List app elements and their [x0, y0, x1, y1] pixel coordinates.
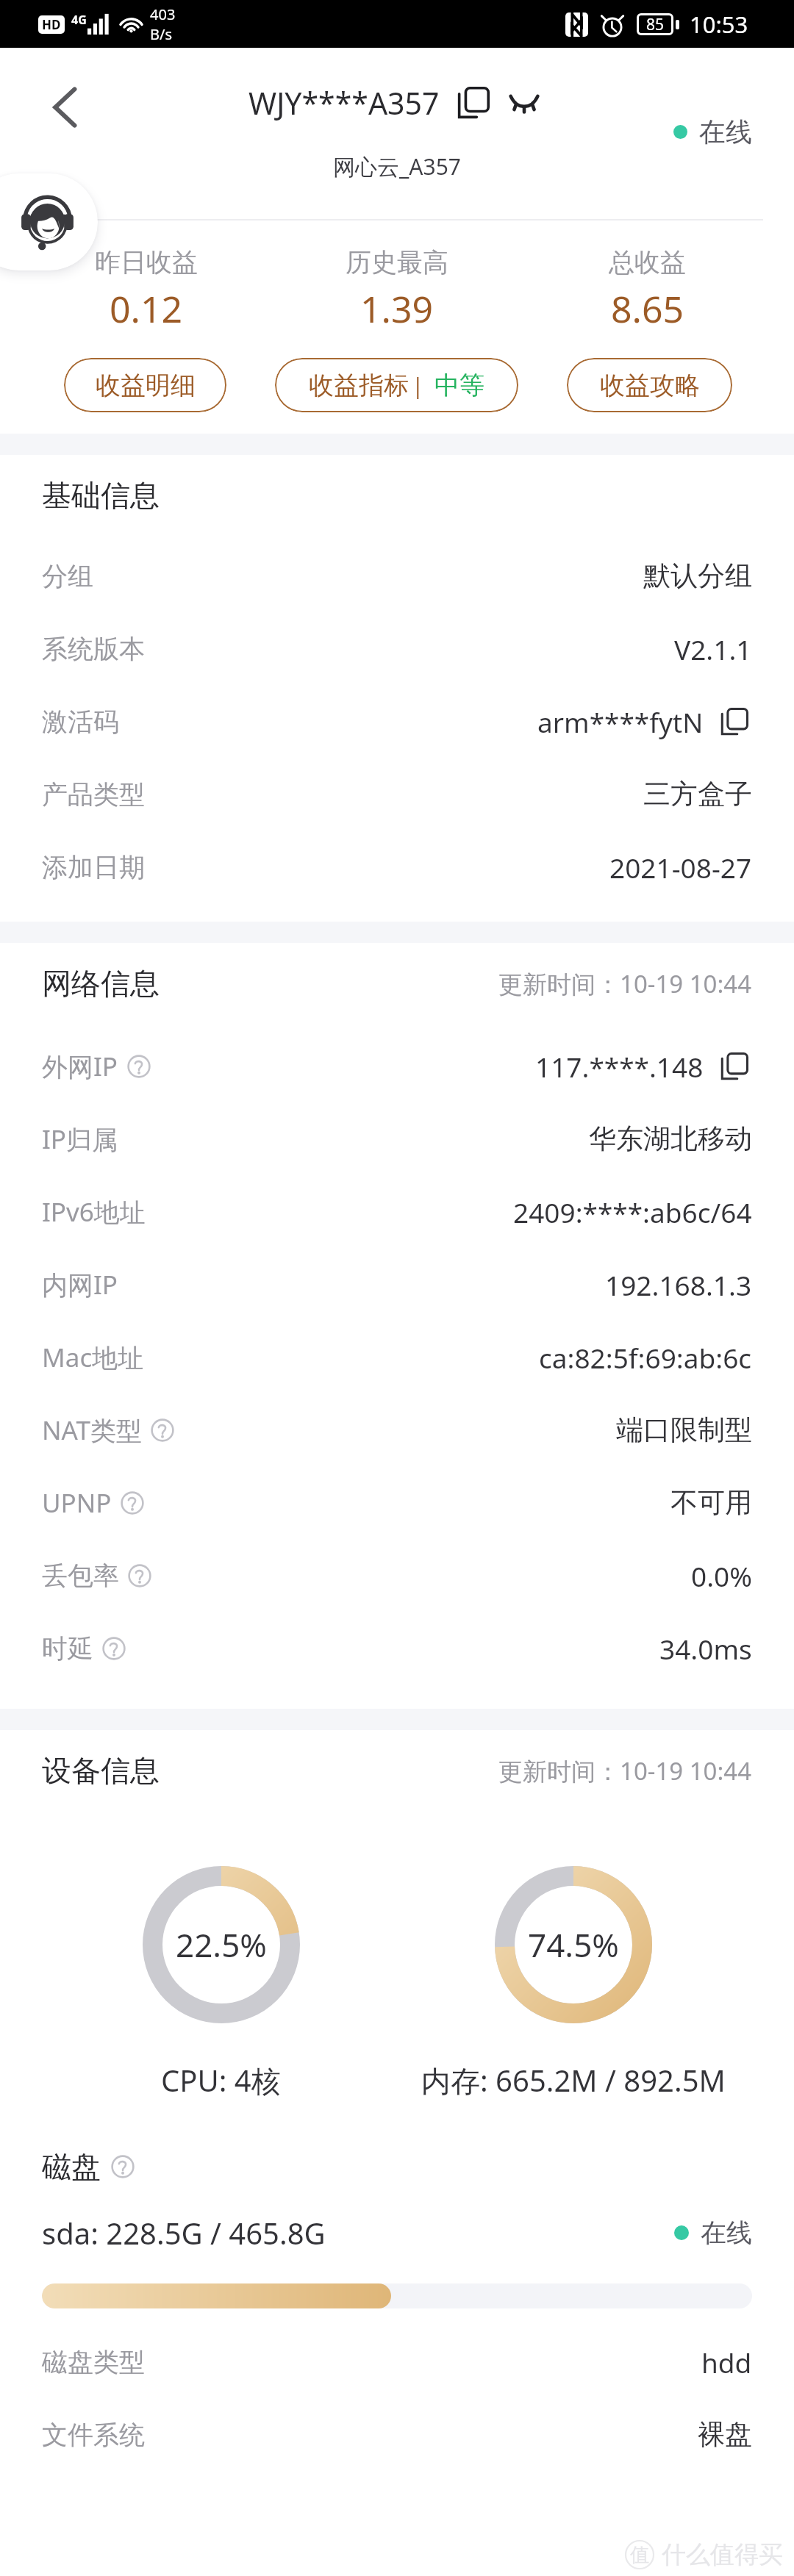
staticText: WJY****A357	[248, 82, 440, 123]
staticText: 10:53	[690, 9, 748, 40]
staticText: 403	[150, 4, 176, 24]
staticText: 三方盒子	[643, 777, 752, 811]
staticText: arm****fytN	[537, 703, 704, 740]
staticText: 文件系统	[42, 2419, 145, 2451]
button[interactable]: 收益指标	[275, 358, 518, 412]
staticText: 74.5%	[528, 1923, 619, 1967]
staticText: 收益明细	[96, 370, 196, 401]
staticText: 系统版本	[42, 633, 145, 665]
staticText: 更新时间：10-19 10:44	[498, 967, 752, 1000]
button[interactable]: 总收益	[522, 246, 773, 334]
staticText: 网络信息	[42, 965, 160, 1002]
staticText: 磁盘	[42, 2148, 101, 2185]
button[interactable]: 收益攻略	[567, 358, 732, 412]
staticText: Mac地址	[42, 1340, 144, 1375]
staticText: 收益攻略	[600, 370, 700, 401]
button[interactable]: 系统版本	[42, 612, 752, 685]
staticText: 激活码	[42, 706, 119, 738]
button[interactable]: Copy 激活码	[717, 704, 752, 739]
staticText: 1.39	[360, 284, 434, 334]
button[interactable]: 收益明细	[64, 358, 226, 412]
staticText: 值	[630, 2543, 649, 2567]
staticText: 中等	[434, 370, 484, 401]
button[interactable]: 磁盘类型	[42, 2325, 752, 2398]
button[interactable]: Back	[35, 77, 95, 137]
staticText: 85	[646, 14, 665, 35]
staticText: hdd	[701, 2344, 752, 2381]
staticText: 华东湖北移动	[589, 1122, 752, 1156]
staticText: 磁盘类型	[42, 2346, 145, 2378]
button[interactable]: 外网IP	[42, 1030, 752, 1102]
staticText: 在线	[701, 2217, 752, 2249]
staticText: IP归属	[42, 1122, 118, 1157]
staticText: 在线	[699, 115, 752, 148]
staticText: HD	[42, 16, 61, 33]
staticText: 0.0%	[691, 1557, 752, 1594]
staticText: 产品类型	[42, 778, 145, 811]
staticText: 裸盘	[698, 2417, 752, 2452]
staticText: 时延	[42, 1632, 93, 1665]
button[interactable]: 时延	[42, 1612, 752, 1685]
staticText: 端口限制型	[616, 1413, 752, 1447]
staticText: 网心云_A357	[333, 151, 461, 182]
staticText: 外网IP	[42, 1049, 118, 1084]
staticText: B/s	[150, 24, 173, 44]
staticText: UPNP	[42, 1485, 112, 1521]
staticText: |	[412, 370, 424, 401]
staticText: 34.0ms	[659, 1630, 752, 1667]
button[interactable]: Copy device name	[456, 85, 491, 121]
staticText: 分组	[42, 560, 93, 592]
staticText: 收益指标	[309, 370, 409, 401]
staticText: 内网IP	[42, 1267, 118, 1302]
staticText: 历史最高	[346, 246, 448, 279]
staticText: 22.5%	[176, 1923, 267, 1967]
button[interactable]: NAT类型	[42, 1393, 752, 1466]
button[interactable]: IPv6地址	[42, 1175, 752, 1248]
button[interactable]: Mac地址	[42, 1321, 752, 1393]
button[interactable]: 添加日期	[42, 830, 752, 903]
button[interactable]: 丢包率	[42, 1539, 752, 1612]
staticText: 192.168.1.3	[605, 1266, 752, 1303]
staticText: 总收益	[609, 246, 686, 279]
button[interactable]: UPNP	[42, 1466, 752, 1539]
staticText: 添加日期	[42, 851, 145, 883]
staticText: 丢包率	[42, 1560, 119, 1592]
staticText: NAT类型	[42, 1413, 142, 1448]
staticText: sda: 228.5G / 465.8G	[42, 2213, 326, 2253]
button[interactable]: Hide device name	[507, 86, 541, 120]
staticText: IPv6地址	[42, 1194, 146, 1230]
staticText: 117.****.148	[535, 1048, 704, 1085]
button[interactable]: 激活码	[42, 685, 752, 758]
staticText: 默认分组	[643, 559, 752, 593]
button[interactable]: 产品类型	[42, 758, 752, 830]
staticText: V2.1.1	[674, 631, 752, 667]
button[interactable]: 昨日收益	[21, 246, 271, 334]
staticText: 什么值得买	[662, 2539, 783, 2570]
staticText: CPU: 4核	[161, 2060, 281, 2100]
staticText: 8.65	[611, 284, 684, 334]
button[interactable]: 在线	[673, 115, 752, 148]
button[interactable]: 文件系统	[42, 2398, 752, 2471]
button[interactable]: IP归属	[42, 1102, 752, 1175]
staticText: ca:82:5f:69:ab:6c	[539, 1339, 752, 1376]
staticText: 内存: 665.2M / 892.5M	[421, 2060, 726, 2100]
staticText: 4G	[71, 12, 87, 28]
button[interactable]: Copy 外网IP	[717, 1049, 752, 1084]
staticText: 2409:****:ab6c/64	[513, 1194, 752, 1230]
staticText: 更新时间：10-19 10:44	[498, 1754, 752, 1787]
staticText: 设备信息	[42, 1752, 160, 1789]
staticText: 0.12	[110, 284, 183, 334]
button[interactable]: 分组	[42, 539, 752, 612]
staticText: 基础信息	[42, 477, 160, 514]
button[interactable]: Customer service	[0, 173, 98, 270]
staticText: 昨日收益	[95, 246, 198, 279]
button[interactable]: 历史最高	[271, 246, 522, 334]
staticText: 不可用	[670, 1485, 752, 1520]
staticText: 2021-08-27	[609, 849, 752, 886]
button[interactable]: 内网IP	[42, 1248, 752, 1321]
